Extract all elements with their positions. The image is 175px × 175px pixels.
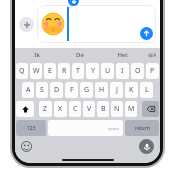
staticText: T: [76, 66, 80, 76]
staticText: E: [48, 66, 52, 76]
button[interactable]: F: [65, 82, 78, 98]
staticText: P: [150, 66, 155, 76]
staticText: G: [84, 85, 90, 95]
staticText: J: [116, 85, 118, 95]
button[interactable]: E: [44, 63, 56, 79]
button[interactable]: D: [50, 82, 63, 98]
staticText: U: [105, 66, 111, 76]
staticText: B: [101, 104, 106, 114]
button[interactable]: M: [125, 101, 137, 117]
staticText: H: [99, 85, 105, 95]
button[interactable]: Shift: [16, 101, 34, 117]
staticText: Q: [19, 66, 25, 76]
button[interactable]: V: [83, 101, 95, 117]
button[interactable]: Send: [37, 5, 156, 43]
button[interactable]: X: [54, 101, 67, 117]
button[interactable]: N: [111, 101, 123, 117]
button[interactable]: J: [110, 82, 123, 98]
button[interactable]: Dictation: [139, 139, 154, 154]
button[interactable]: C: [69, 101, 81, 117]
button[interactable]: Q: [16, 63, 28, 79]
button[interactable]: H: [95, 82, 108, 98]
button[interactable]: return: [125, 120, 159, 136]
button[interactable]: B: [97, 101, 109, 117]
staticText: A: [26, 85, 31, 95]
staticText: O: [135, 66, 141, 76]
button[interactable]: Scroll to bottom: [68, 0, 79, 6]
staticText: Het: [117, 51, 128, 59]
staticText: Z: [43, 104, 48, 114]
staticText: F: [70, 85, 74, 95]
button[interactable]: spatie: [48, 120, 123, 136]
button[interactable]: Send: [140, 27, 153, 40]
staticText: I: [121, 66, 124, 76]
button[interactable]: I: [116, 63, 129, 79]
staticText: L: [145, 85, 149, 95]
button[interactable]: O: [131, 63, 144, 79]
staticText: V: [87, 104, 92, 114]
staticText: D: [54, 85, 60, 95]
button[interactable]: U: [101, 63, 114, 79]
button[interactable]: T: [72, 63, 84, 79]
button[interactable]: Emoji keyboard: [21, 141, 32, 152]
staticText: M: [128, 104, 135, 114]
staticText: K: [129, 85, 134, 95]
button[interactable]: G: [80, 82, 93, 98]
staticText: R: [62, 66, 67, 76]
button[interactable]: L: [140, 82, 153, 98]
button[interactable]: A: [22, 82, 34, 98]
button[interactable]: Add attachment: [19, 17, 34, 32]
button[interactable]: Ik: [15, 51, 58, 59]
staticText: 😀A: [148, 52, 157, 59]
staticText: W: [33, 66, 40, 76]
staticText: spatie: [108, 126, 120, 131]
staticText: X: [58, 104, 63, 114]
staticText: N: [114, 104, 120, 114]
button[interactable]: K: [125, 82, 138, 98]
button[interactable]: Z: [39, 101, 52, 117]
button[interactable]: R: [58, 63, 70, 79]
button[interactable]: Emoji suggestions: [144, 52, 160, 59]
staticText: 123: [27, 125, 36, 132]
staticText: De: [76, 51, 84, 59]
button[interactable]: 123: [16, 120, 46, 136]
staticText: return: [135, 125, 150, 132]
staticText: Ik: [34, 51, 40, 59]
button[interactable]: P: [146, 63, 159, 79]
button[interactable]: Y: [86, 63, 99, 79]
button[interactable]: Het: [101, 51, 144, 59]
staticText: Y: [91, 66, 95, 76]
button[interactable]: W: [30, 63, 42, 79]
staticText: S: [40, 85, 44, 95]
button[interactable]: S: [36, 82, 48, 98]
button[interactable]: De: [58, 51, 101, 59]
button[interactable]: Backspace: [142, 101, 159, 117]
staticText: C: [73, 104, 78, 114]
